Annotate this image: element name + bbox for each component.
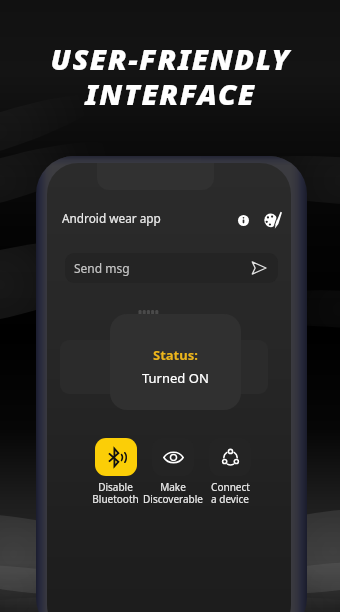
staticText: USER-FRIENDLY	[50, 39, 291, 78]
staticText: Android wear app	[62, 210, 161, 226]
button[interactable]: Info	[238, 215, 249, 226]
button[interactable]: Send msg	[65, 253, 278, 283]
staticText: a device	[211, 492, 249, 506]
button[interactable]: Disable Bluetooth	[95, 438, 137, 476]
staticText: Bluetooth	[92, 492, 139, 506]
staticText: Status:	[153, 346, 198, 364]
button[interactable]: Connect a device	[209, 438, 251, 476]
staticText: Make	[160, 480, 186, 494]
staticText: INTERFACE	[85, 74, 256, 113]
staticText: Discoverable	[143, 492, 203, 506]
button[interactable]: Make Discoverable	[152, 438, 194, 476]
staticText: Connect	[211, 480, 250, 494]
button[interactable]: Change theme	[264, 211, 282, 229]
staticText: Disable	[98, 480, 133, 494]
staticText: Send msg	[74, 260, 130, 276]
staticText: Turned ON	[142, 369, 209, 387]
